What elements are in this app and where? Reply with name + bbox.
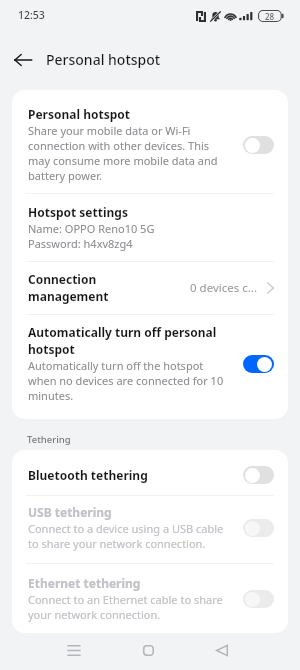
- staticText: Tethering: [27, 433, 71, 446]
- staticText: Share your mobile data or Wi-Fi connecti…: [28, 123, 228, 183]
- button[interactable]: Back: [0, 31, 46, 88]
- button[interactable]: Bluetooth tethering: [12, 450, 288, 495]
- button[interactable]: Recent apps: [37, 630, 111, 670]
- staticText: Password: h4xv8zg4: [28, 236, 133, 251]
- staticText: Connect to an Ethernet cable to share yo…: [28, 592, 228, 622]
- button[interactable]: Ethernet tethering: [12, 564, 288, 633]
- button[interactable]: Turn on: [243, 136, 274, 154]
- button[interactable]: Turn off: [243, 355, 274, 373]
- button[interactable]: USB tethering: [12, 496, 288, 563]
- staticText: Bluetooth tethering: [28, 467, 243, 484]
- staticText: Automatically turn off personal hotspot: [28, 324, 228, 358]
- staticText: Connection management: [28, 271, 118, 305]
- staticText: USB tethering: [28, 504, 112, 521]
- button[interactable]: Personal hotspot: [12, 90, 288, 193]
- button[interactable]: Back: [185, 630, 259, 670]
- staticText: Personal hotspot: [46, 50, 161, 69]
- button[interactable]: Connection management: [12, 262, 288, 314]
- staticText: Hotspot settings: [28, 204, 128, 221]
- button[interactable]: Hotspot settings: [12, 194, 288, 261]
- button[interactable]: Home: [111, 630, 185, 670]
- staticText: Ethernet tethering: [28, 575, 141, 592]
- button[interactable]: Turn on: [243, 466, 274, 484]
- staticText: 28: [265, 11, 275, 22]
- button[interactable]: Turn on: [243, 590, 274, 608]
- staticText: 12:53: [18, 8, 45, 22]
- staticText: 0 devices c...: [190, 280, 257, 296]
- staticText: Name: OPPO Reno10 5G: [28, 221, 155, 236]
- button[interactable]: Automatically turn off personal hotspot: [12, 315, 288, 419]
- staticText: Connect to a device using a USB cable to…: [28, 521, 228, 551]
- staticText: Personal hotspot: [28, 106, 131, 123]
- button[interactable]: Turn on: [243, 519, 274, 537]
- staticText: Automatically turn off the hotspot when …: [28, 358, 228, 403]
